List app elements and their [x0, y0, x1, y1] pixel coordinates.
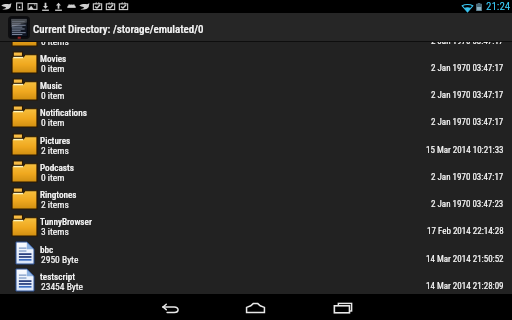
- staticText: 0 item: [41, 172, 65, 183]
- staticText: 2 items: [41, 145, 69, 156]
- staticText: Movies: [40, 53, 67, 64]
- button[interactable]: Home: [213, 294, 297, 320]
- staticText: 0 item: [41, 63, 65, 74]
- staticText: 14 Mar 2014 21:28:09: [426, 281, 504, 292]
- staticText: 2 Jan 1970 03:47:23: [431, 199, 504, 210]
- staticText: 0 item: [41, 90, 65, 101]
- staticText: 23454 Byte: [41, 281, 84, 292]
- staticText: 2 Jan 1970 03:47:17: [431, 117, 504, 128]
- staticText: Notifications: [40, 107, 87, 118]
- staticText: 17 Feb 2014 22:14:28: [427, 226, 504, 237]
- staticText: 14 Mar 2014 21:50:52: [426, 254, 504, 265]
- button[interactable]: Podcasts: [0, 158, 512, 185]
- staticText: Music: [40, 80, 63, 91]
- button[interactable]: Pictures: [0, 131, 512, 158]
- button[interactable]: bbc: [0, 240, 512, 267]
- button[interactable]: Back: [128, 294, 212, 320]
- staticText: 2 Jan 1970 03:47:17: [431, 90, 504, 101]
- staticText: Current Directory: /storage/emulated/0: [33, 23, 204, 36]
- staticText: 2 Jan 1970 03:47:17: [431, 172, 504, 183]
- staticText: 2 Jan 1970 03:47:17: [431, 63, 504, 74]
- staticText: Podcasts: [40, 162, 74, 173]
- staticText: 3 items: [41, 226, 69, 237]
- staticText: 0 items: [41, 42, 69, 47]
- staticText: Pictures: [40, 135, 71, 146]
- staticText: 2 Jan 1970 03:47:17: [431, 42, 504, 47]
- staticText: Ringtones: [40, 189, 77, 200]
- button[interactable]: Movies: [0, 49, 512, 76]
- button[interactable]: Notifications: [0, 103, 512, 130]
- staticText: bbc: [40, 244, 54, 255]
- button[interactable]: App icon: [8, 16, 30, 39]
- staticText: TunnyBrowser: [40, 216, 92, 227]
- staticText: 2 items: [41, 199, 69, 210]
- staticText: 15 Mar 2014 10:21:33: [426, 145, 504, 156]
- button[interactable]: Download: [0, 42, 512, 49]
- button[interactable]: Music: [0, 76, 512, 103]
- button[interactable]: Ringtones: [0, 185, 512, 212]
- button[interactable]: testscript: [0, 267, 512, 294]
- button[interactable]: Recent apps: [301, 294, 385, 320]
- staticText: testscript: [40, 271, 75, 282]
- staticText: 21:24: [486, 0, 511, 13]
- staticText: 0 item: [41, 117, 65, 128]
- staticText: 2950 Byte: [41, 254, 79, 265]
- button[interactable]: TunnyBrowser: [0, 212, 512, 239]
